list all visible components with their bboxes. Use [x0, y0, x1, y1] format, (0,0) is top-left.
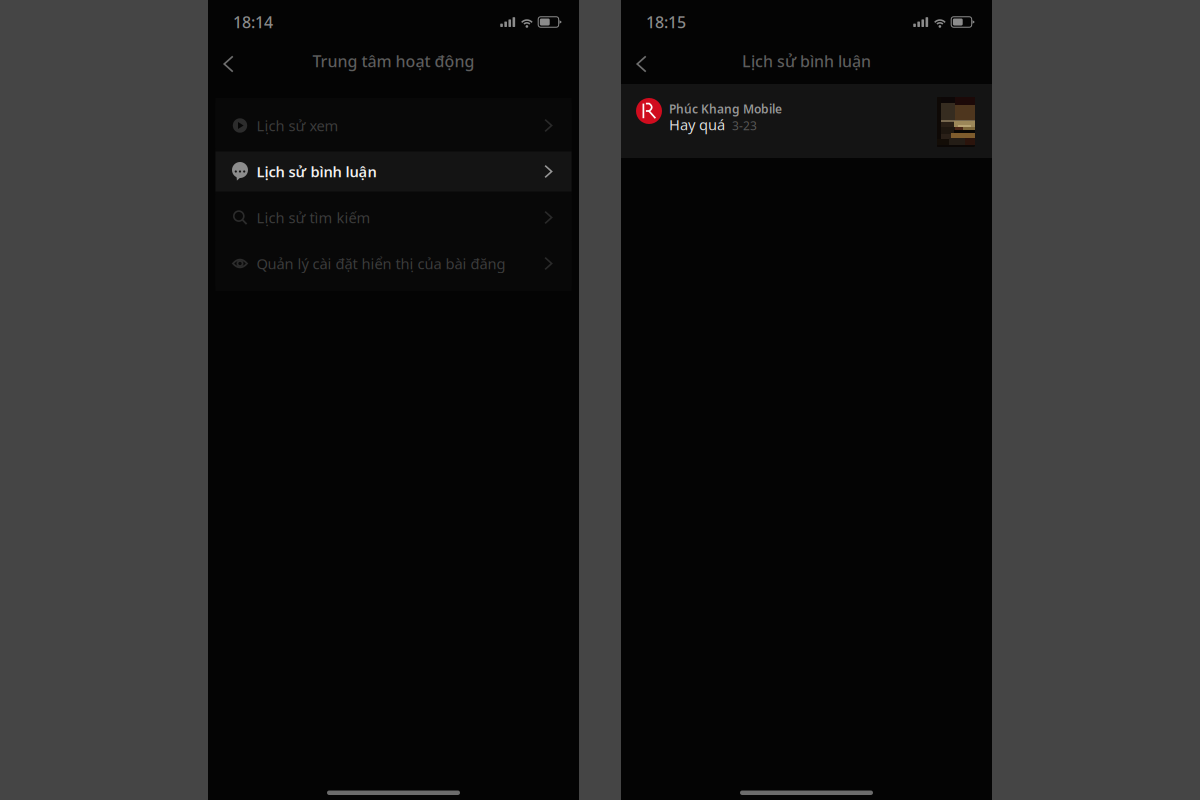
- button[interactable]: Back: [621, 45, 659, 83]
- staticText: 18:14: [233, 11, 273, 33]
- staticText: Phúc Khang Mobile: [669, 101, 782, 117]
- button[interactable]: Lịch sử xem: [215, 102, 571, 148]
- button[interactable]: Phúc Khang Mobile: [621, 84, 992, 158]
- button[interactable]: Quản lý cài đặt hiển thị của bài đăng: [215, 240, 571, 286]
- staticText: Quản lý cài đặt hiển thị của bài đăng: [256, 254, 505, 273]
- staticText: Hay quá: [669, 115, 725, 134]
- staticText: Lịch sử tìm kiếm: [256, 208, 370, 227]
- staticText: 18:15: [646, 11, 686, 33]
- button[interactable]: Lịch sử bình luận: [215, 148, 571, 194]
- staticText: Lịch sử bình luận: [256, 162, 376, 181]
- staticText: Lịch sử bình luận: [742, 50, 871, 72]
- button[interactable]: Lịch sử tìm kiếm: [215, 194, 571, 240]
- button[interactable]: Back: [208, 45, 246, 83]
- staticText: Trung tâm hoạt động: [312, 50, 474, 72]
- staticText: Lịch sử xem: [256, 116, 338, 135]
- staticText: 3-23: [732, 118, 757, 134]
